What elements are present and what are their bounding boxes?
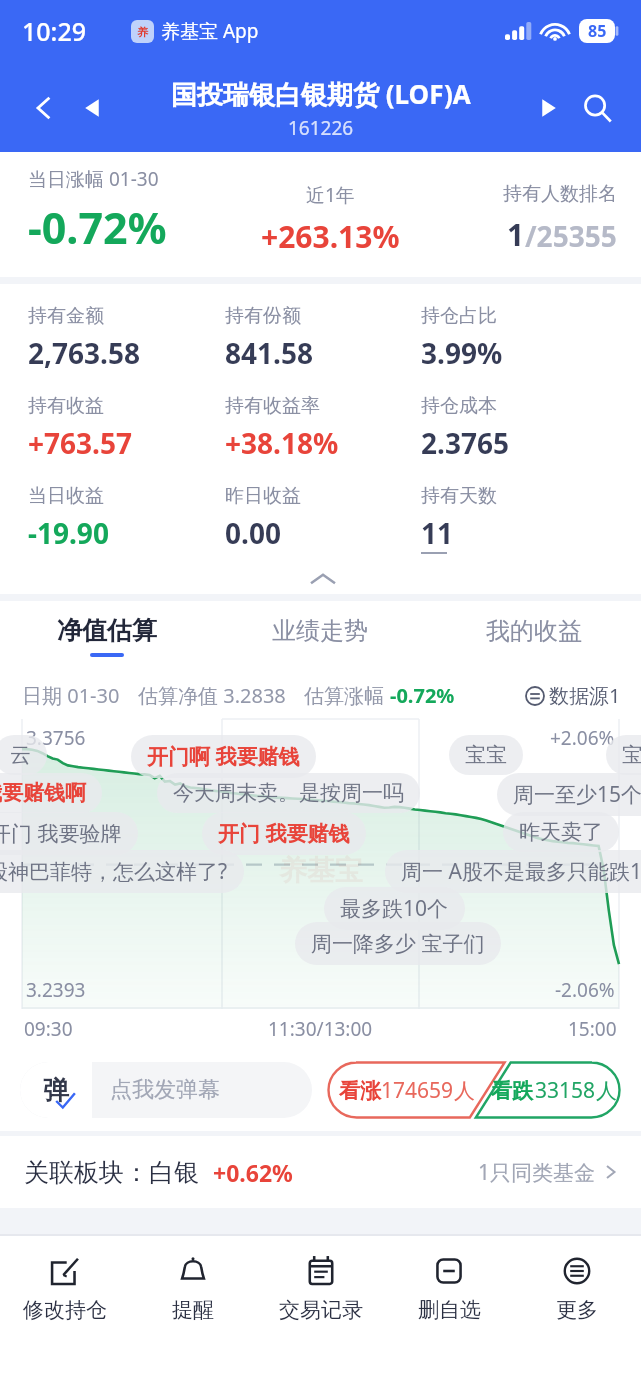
staticText: +38.18% <box>225 424 339 462</box>
staticText: +2.06% <box>550 725 615 751</box>
button[interactable]: 弹 <box>20 1062 312 1118</box>
button[interactable]: 开门 我要验牌 <box>0 819 122 848</box>
staticText: 养基宝 App <box>161 18 259 44</box>
button[interactable]: 股神巴菲特，怎么这样了? <box>0 857 228 886</box>
button[interactable]: 我的收益 <box>427 601 641 671</box>
button[interactable]: 看涨 <box>327 1061 487 1119</box>
staticText: 云 <box>10 742 31 768</box>
button[interactable]: 开门 我要赌钱 <box>218 819 350 848</box>
button[interactable]: 宝宝 <box>622 742 641 768</box>
staticText: 开门 我要验牌 <box>0 819 122 848</box>
staticText: 开门啊 我要赌钱 <box>147 742 300 771</box>
button[interactable]: 宝宝 <box>465 742 507 768</box>
button[interactable]: 云 <box>10 742 31 768</box>
button[interactable]: 数据源1 <box>525 682 621 709</box>
staticText: 持有收益率 <box>225 394 320 418</box>
staticText: +763.57 <box>28 424 132 462</box>
button[interactable]: Back <box>18 82 70 134</box>
staticText: 看跌 <box>491 1078 533 1104</box>
button[interactable]: 周一 A股不是最多只能跌10 <box>401 857 641 886</box>
staticText: 人 <box>454 1078 475 1104</box>
staticText: 点我发弹幕 <box>110 1076 220 1104</box>
staticText: 国投瑞银白银期货 (LOF)A <box>171 76 471 112</box>
staticText: 持有天数 <box>421 484 497 508</box>
button[interactable]: 周一至少15个点 <box>513 780 641 809</box>
button[interactable]: 最多跌10个 <box>340 894 449 923</box>
staticText: -0.72% <box>390 682 455 709</box>
staticText: 10:29 <box>22 14 87 48</box>
button[interactable]: 关联板块：白银 <box>0 1136 641 1208</box>
staticText: -19.90 <box>28 514 109 552</box>
staticText: 持仓占比 <box>421 304 497 328</box>
staticText: 更多 <box>556 1297 598 1323</box>
button[interactable]: 业绩走势 <box>213 601 427 671</box>
staticText: 2.3765 <box>421 424 509 462</box>
staticText: 看涨 <box>339 1078 381 1104</box>
button[interactable]: Next fund <box>525 85 571 131</box>
button[interactable]: Previous fund <box>70 85 116 131</box>
staticText: 宝宝 <box>622 742 641 768</box>
staticText: +263.13% <box>261 216 400 257</box>
button[interactable]: 提醒 <box>129 1236 257 1340</box>
staticText: 1只同类基金 <box>478 1158 596 1187</box>
staticText: 提醒 <box>172 1297 214 1323</box>
staticText: 持有份额 <box>225 304 301 328</box>
staticText: 0.00 <box>225 514 281 552</box>
button[interactable]: 看跌 <box>487 1061 621 1119</box>
staticText: 昨天卖了 <box>519 819 603 845</box>
button[interactable]: 开门啊 我要赌钱 <box>147 742 300 771</box>
staticText: /25355 <box>525 217 617 255</box>
staticText: 数据源1 <box>549 682 621 709</box>
staticText: 11 <box>421 514 454 552</box>
staticText: 15:00 <box>568 1016 617 1042</box>
staticText: 近1年 <box>306 182 355 208</box>
button[interactable]: Search <box>571 82 623 134</box>
staticText: 修改持仓 <box>23 1297 107 1323</box>
staticText: 日期 01-30 <box>22 682 120 709</box>
button[interactable]: 交易记录 <box>257 1236 385 1340</box>
staticText: 3.3756 <box>26 725 86 751</box>
staticText: 11:30/13:00 <box>268 1016 373 1042</box>
button[interactable]: 删自选 <box>385 1236 513 1340</box>
staticText: 当日涨幅 01-30 <box>28 166 159 192</box>
staticText: 交易记录 <box>279 1297 363 1323</box>
staticText: 174659 <box>381 1076 454 1105</box>
button[interactable]: 净值估算 <box>0 601 213 671</box>
button[interactable]: 昨天卖了 <box>519 819 603 845</box>
staticText: 估算涨幅 <box>304 682 390 709</box>
staticText: 今天周末卖。是按周一吗 <box>173 780 404 806</box>
staticText: 养 <box>137 25 148 39</box>
button[interactable]: 我要赌钱啊 <box>0 780 86 806</box>
staticText: 周一降多少 宝子们 <box>311 929 485 958</box>
staticText: +0.62% <box>213 1157 293 1188</box>
staticText: -0.72% <box>28 198 167 257</box>
staticText: -2.06% <box>555 977 615 1003</box>
staticText: 持有人数排名 <box>503 182 617 206</box>
staticText: 昨日收益 <box>225 484 301 508</box>
staticText: 估算净值 3.2838 <box>138 682 286 709</box>
staticText: 关联板块：白银 <box>24 1157 199 1188</box>
staticText: 1 <box>507 214 525 255</box>
staticText: 我的收益 <box>486 616 582 646</box>
staticText: 85 <box>588 20 607 42</box>
button[interactable]: 更多 <box>513 1236 641 1340</box>
button[interactable]: 修改持仓 <box>0 1236 129 1340</box>
staticText: 3.99% <box>421 334 503 372</box>
staticText: 净值估算 <box>57 615 157 646</box>
staticText: 养基宝 <box>279 853 363 888</box>
staticText: 最多跌10个 <box>340 894 449 923</box>
staticText: 我要赌钱啊 <box>0 780 86 806</box>
staticText: 33158 <box>535 1076 596 1105</box>
staticText: 2,763.58 <box>28 334 140 372</box>
staticText: 09:30 <box>24 1016 73 1042</box>
staticText: 周一至少15个点 <box>513 780 641 809</box>
staticText: 持有金额 <box>28 304 104 328</box>
button[interactable]: 周一降多少 宝子们 <box>311 929 485 958</box>
staticText: 持有收益 <box>28 394 104 418</box>
staticText: 周一 A股不是最多只能跌10 <box>401 857 641 886</box>
button[interactable]: 今天周末卖。是按周一吗 <box>173 780 404 806</box>
staticText: 股神巴菲特，怎么这样了? <box>0 857 228 886</box>
staticText: 删自选 <box>418 1297 481 1323</box>
staticText: 持仓成本 <box>421 394 497 418</box>
button[interactable]: Collapse <box>28 564 617 594</box>
